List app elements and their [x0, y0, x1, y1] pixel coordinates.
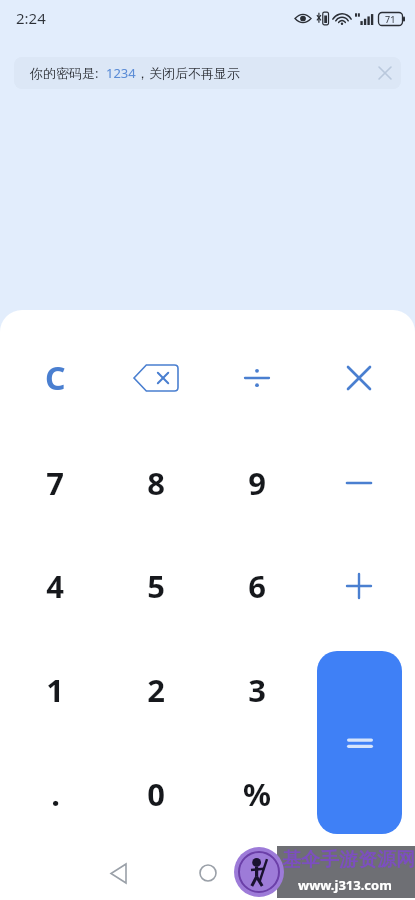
button[interactable]: Back	[100, 855, 136, 891]
staticText: 4	[46, 565, 64, 607]
staticText: 1234	[106, 64, 136, 82]
staticText: 5	[147, 565, 165, 607]
staticText: C	[45, 356, 66, 400]
staticText: 基伞手游资源网	[282, 848, 415, 872]
button[interactable]: Clear	[5, 332, 105, 424]
staticText: ，关闭后不再显示	[136, 65, 240, 81]
staticText: 2	[147, 669, 165, 711]
staticText: 7	[46, 462, 64, 504]
staticText: 1	[46, 669, 64, 711]
staticText: 71	[385, 13, 396, 25]
staticText: www.j313.com	[298, 876, 392, 894]
button[interactable]: Backspace	[106, 332, 206, 424]
staticText: .	[51, 773, 60, 815]
button[interactable]: Divide	[207, 332, 307, 424]
button[interactable]: Minus	[309, 437, 409, 529]
staticText: 8	[147, 462, 165, 504]
button[interactable]: %	[207, 748, 307, 840]
staticText: %	[243, 773, 271, 815]
staticText: 0	[147, 773, 165, 815]
button[interactable]: Plus	[309, 540, 409, 632]
staticText: 6	[248, 565, 266, 607]
button[interactable]: Multiply	[309, 332, 409, 424]
button[interactable]: 你的密码是:	[14, 57, 401, 89]
button[interactable]: 8	[106, 437, 206, 529]
staticText: 3	[248, 669, 266, 711]
button[interactable]: 5	[106, 540, 206, 632]
button[interactable]: Home	[190, 855, 226, 891]
staticText: 你的密码是:	[30, 64, 106, 82]
button[interactable]: Close	[369, 57, 401, 89]
button[interactable]: 9	[207, 437, 307, 529]
button[interactable]: 7	[5, 437, 105, 529]
button[interactable]: .	[5, 748, 105, 840]
button[interactable]: Equals	[317, 651, 402, 834]
button[interactable]: 1	[5, 644, 105, 736]
button[interactable]: 4	[5, 540, 105, 632]
button[interactable]: 0	[106, 748, 206, 840]
button[interactable]: 2	[106, 644, 206, 736]
button[interactable]: 6	[207, 540, 307, 632]
staticText: 2:24	[16, 8, 46, 28]
button[interactable]: 3	[207, 644, 307, 736]
staticText: 9	[248, 462, 266, 504]
